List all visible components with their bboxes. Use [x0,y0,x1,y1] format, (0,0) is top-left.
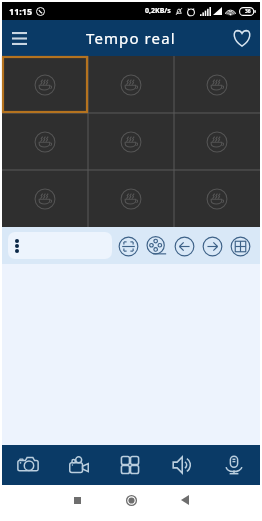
button[interactable]: More options [8,232,112,259]
button[interactable]: Camera channel 1 [2,56,88,113]
button[interactable]: Home [112,485,150,515]
staticText: 11:15 [9,5,33,17]
button[interactable]: Camera channel 6 [174,113,260,170]
button[interactable]: Back [166,485,204,515]
staticText: Tempo real [86,28,176,48]
button[interactable]: Playback [142,230,170,262]
button[interactable]: Camera channel 2 [88,56,174,113]
button[interactable]: Camera channel 8 [88,170,174,227]
button[interactable]: Record video [53,445,104,485]
button[interactable]: Camera channel 4 [2,113,88,170]
button[interactable]: Snapshot [2,445,53,485]
button[interactable]: Camera channel 3 [174,56,260,113]
button[interactable]: Change layout [226,230,254,262]
button[interactable]: Split layout [104,445,156,485]
button[interactable]: Audio [156,445,208,485]
staticText: 0,2KB/s [145,6,171,16]
button[interactable]: Camera channel 9 [174,170,260,227]
button[interactable]: Open navigation menu [2,20,36,56]
button[interactable]: Fit to screen [114,230,142,262]
button[interactable]: Favorites [224,20,260,56]
button[interactable]: Recent apps [58,485,96,515]
button[interactable]: Next [198,230,226,262]
button[interactable]: Previous [170,230,198,262]
button[interactable]: Camera channel 7 [2,170,88,227]
staticText: 36 [245,8,251,15]
button[interactable]: Camera channel 5 [88,113,174,170]
button[interactable]: Microphone [208,445,260,485]
